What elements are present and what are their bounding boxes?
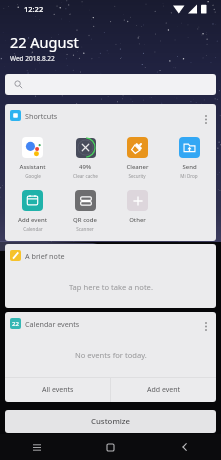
staticText: Google — [25, 173, 41, 179]
staticText: A brief note — [25, 251, 65, 261]
staticText: 22 — [12, 320, 19, 328]
button[interactable]: All events — [5, 378, 110, 402]
button[interactable]: Add event — [6, 185, 59, 232]
staticText: Other — [129, 216, 146, 224]
staticText: Shortcuts — [25, 111, 58, 121]
button[interactable]: Home — [73, 434, 147, 460]
staticText: No events for today. — [75, 350, 147, 360]
staticText: Assistant — [19, 163, 46, 171]
staticText: Customize — [91, 416, 131, 427]
button[interactable]: Recents — [0, 434, 73, 460]
staticText: Cleaner — [126, 163, 149, 171]
staticText: Clear cache — [73, 173, 98, 179]
button[interactable]: Add event — [111, 378, 216, 402]
staticText: Tap here to take a note. — [69, 282, 153, 292]
button[interactable]: More options — [197, 317, 215, 335]
staticText: Calendar events — [25, 319, 80, 329]
button[interactable]: Search — [5, 74, 216, 95]
staticText: Calendar — [23, 226, 43, 232]
staticText: Send — [182, 163, 197, 171]
button[interactable]: Back — [147, 434, 221, 460]
staticText: 12:22 — [24, 4, 44, 14]
staticText: 49% — [79, 163, 91, 171]
button[interactable]: Other — [111, 185, 163, 224]
staticText: QR code — [73, 216, 97, 224]
staticText: Security — [128, 173, 146, 179]
staticText: Scanner — [76, 226, 94, 232]
button[interactable]: Customize — [5, 410, 216, 433]
button[interactable]: Send — [163, 132, 215, 179]
staticText: 22 August — [10, 32, 79, 52]
staticText: Add event — [18, 216, 47, 224]
button[interactable]: More options — [197, 110, 215, 128]
button[interactable]: Assistant — [6, 132, 59, 179]
button[interactable]: QR code — [59, 185, 111, 232]
staticText: All events — [42, 385, 74, 395]
staticText: Wed 2018.8.22 — [10, 54, 55, 63]
button[interactable]: Cleaner — [111, 132, 163, 179]
staticText: Mi Drop — [180, 173, 198, 179]
button[interactable]: Tap here to take a note. — [5, 266, 216, 308]
staticText: Add event — [147, 385, 181, 395]
button[interactable]: 49% — [59, 132, 111, 179]
